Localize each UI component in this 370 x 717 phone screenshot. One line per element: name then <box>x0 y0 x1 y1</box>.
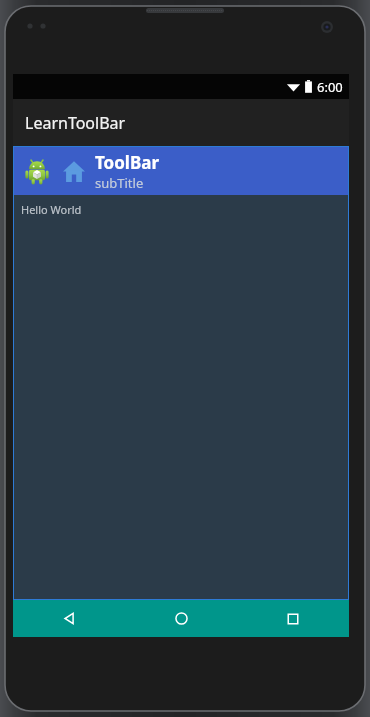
staticText: Hello World <box>21 202 82 217</box>
button[interactable]: Recent apps <box>237 600 349 637</box>
staticText: subTitle <box>95 174 144 192</box>
button[interactable]: Home <box>59 156 89 186</box>
button[interactable]: Navigate up <box>14 147 348 195</box>
staticText: 6:00 <box>317 78 343 96</box>
staticText: LearnToolBar <box>25 112 126 134</box>
button[interactable]: LearnToolBar <box>13 99 349 146</box>
button[interactable]: Back <box>13 600 125 637</box>
staticText: ToolBar <box>95 151 160 174</box>
button[interactable]: Home <box>125 600 237 637</box>
button[interactable]: Navigate up <box>19 153 55 189</box>
